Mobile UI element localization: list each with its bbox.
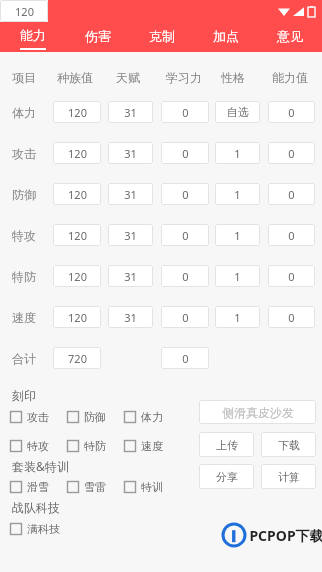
button[interactable]: 下载 [261, 432, 316, 457]
staticText: 套装&特训 [12, 458, 69, 474]
staticText: 31 [124, 105, 137, 120]
staticText: 1 [234, 269, 241, 284]
staticText: 滑雪 [27, 480, 49, 494]
staticText: 意见 [277, 28, 303, 44]
staticText: 0 [182, 269, 189, 284]
button[interactable]: 1 [215, 183, 260, 205]
staticText: 0 [288, 146, 295, 161]
staticText: 特训 [141, 480, 163, 494]
button[interactable]: 特训 [124, 477, 181, 497]
button[interactable]: 120 [53, 224, 101, 246]
button[interactable]: 120 [53, 265, 101, 287]
staticText: 120 [15, 4, 34, 19]
button[interactable]: 720 [53, 347, 101, 369]
staticText: 31 [124, 269, 137, 284]
button[interactable]: 0 [161, 142, 209, 164]
button[interactable]: 侧滑真皮沙发 [199, 400, 316, 424]
button[interactable]: 满科技 [10, 519, 67, 539]
button[interactable]: 120 [53, 101, 101, 123]
button[interactable]: 能力 [0, 22, 65, 52]
staticText: 120 [15, 4, 34, 19]
button[interactable]: 120 [53, 142, 101, 164]
staticText: 合计 [12, 351, 36, 366]
button[interactable]: 31 [108, 265, 153, 287]
staticText: 能力值 [272, 70, 308, 85]
staticText: 120 [15, 4, 34, 19]
button[interactable]: 31 [108, 101, 153, 123]
button[interactable]: 0 [161, 347, 209, 369]
button[interactable]: 120 [0, 0, 48, 22]
button[interactable]: 分享 [199, 464, 254, 489]
staticText: 0 [182, 146, 189, 161]
staticText: 种族值 [57, 70, 93, 85]
staticText: 1 [234, 228, 241, 243]
button[interactable]: 120 [0, 0, 48, 22]
button[interactable]: 特攻 [10, 436, 67, 456]
staticText: 上传 [216, 438, 238, 452]
button[interactable]: 上传 [199, 432, 254, 457]
button[interactable]: 克制 [130, 22, 194, 52]
button[interactable]: 120 [0, 0, 48, 22]
staticText: 120 [15, 4, 34, 19]
button[interactable]: 意见 [258, 22, 322, 52]
button[interactable]: 0 [268, 101, 315, 123]
button[interactable]: 1 [215, 224, 260, 246]
staticText: 体力 [141, 410, 163, 424]
button[interactable]: 0 [268, 142, 315, 164]
staticText: 速度 [12, 310, 36, 325]
button[interactable]: 伤害 [65, 22, 130, 52]
staticText: 加点 [213, 28, 239, 44]
button[interactable]: 31 [108, 183, 153, 205]
button[interactable]: 体力 [124, 407, 181, 427]
button[interactable]: 自选 [215, 101, 260, 123]
button[interactable]: 120 [0, 0, 48, 22]
button[interactable]: 0 [268, 183, 315, 205]
button[interactable]: 31 [108, 224, 153, 246]
button[interactable]: 攻击 [10, 407, 67, 427]
button[interactable]: 120 [53, 183, 101, 205]
staticText: 速度 [141, 439, 163, 453]
staticText: 120 [68, 269, 87, 284]
button[interactable]: 防御 [67, 407, 124, 427]
button[interactable]: 120 [53, 306, 101, 328]
staticText: 能力 [20, 27, 46, 43]
button[interactable]: 速度 [124, 436, 181, 456]
staticText: 0 [288, 228, 295, 243]
button[interactable]: 31 [108, 306, 153, 328]
staticText: 特攻 [27, 439, 49, 453]
staticText: 攻击 [12, 146, 36, 161]
staticText: PCPOP下载 [249, 526, 322, 545]
staticText: 0 [182, 351, 189, 366]
button[interactable]: 0 [161, 183, 209, 205]
button[interactable]: 31 [108, 142, 153, 164]
staticText: 战队科技 [12, 500, 60, 515]
button[interactable]: 0 [161, 101, 209, 123]
staticText: 0 [182, 228, 189, 243]
button[interactable]: 1 [215, 142, 260, 164]
button[interactable]: 0 [268, 224, 315, 246]
staticText: 分享 [216, 470, 238, 484]
button[interactable]: 0 [268, 306, 315, 328]
staticText: 0 [288, 310, 295, 325]
button[interactable]: 滑雪 [10, 477, 67, 497]
staticText: 0 [288, 269, 295, 284]
staticText: 0 [182, 310, 189, 325]
button[interactable]: 1 [215, 265, 260, 287]
button[interactable]: 0 [161, 306, 209, 328]
staticText: 120 [15, 4, 34, 19]
button[interactable]: 计算 [261, 464, 316, 489]
button[interactable]: 加点 [194, 22, 258, 52]
button[interactable]: 120 [0, 0, 48, 22]
staticText: 雪雷 [84, 480, 106, 494]
button[interactable]: 1 [215, 306, 260, 328]
button[interactable]: 0 [161, 265, 209, 287]
staticText: 项目 [12, 70, 36, 85]
staticText: 120 [68, 187, 87, 202]
button[interactable]: 120 [0, 0, 48, 22]
button[interactable]: 0 [161, 224, 209, 246]
staticText: 特攻 [12, 228, 36, 243]
button[interactable]: 雪雷 [67, 477, 124, 497]
button[interactable]: 0 [268, 265, 315, 287]
button[interactable]: 特防 [67, 436, 124, 456]
